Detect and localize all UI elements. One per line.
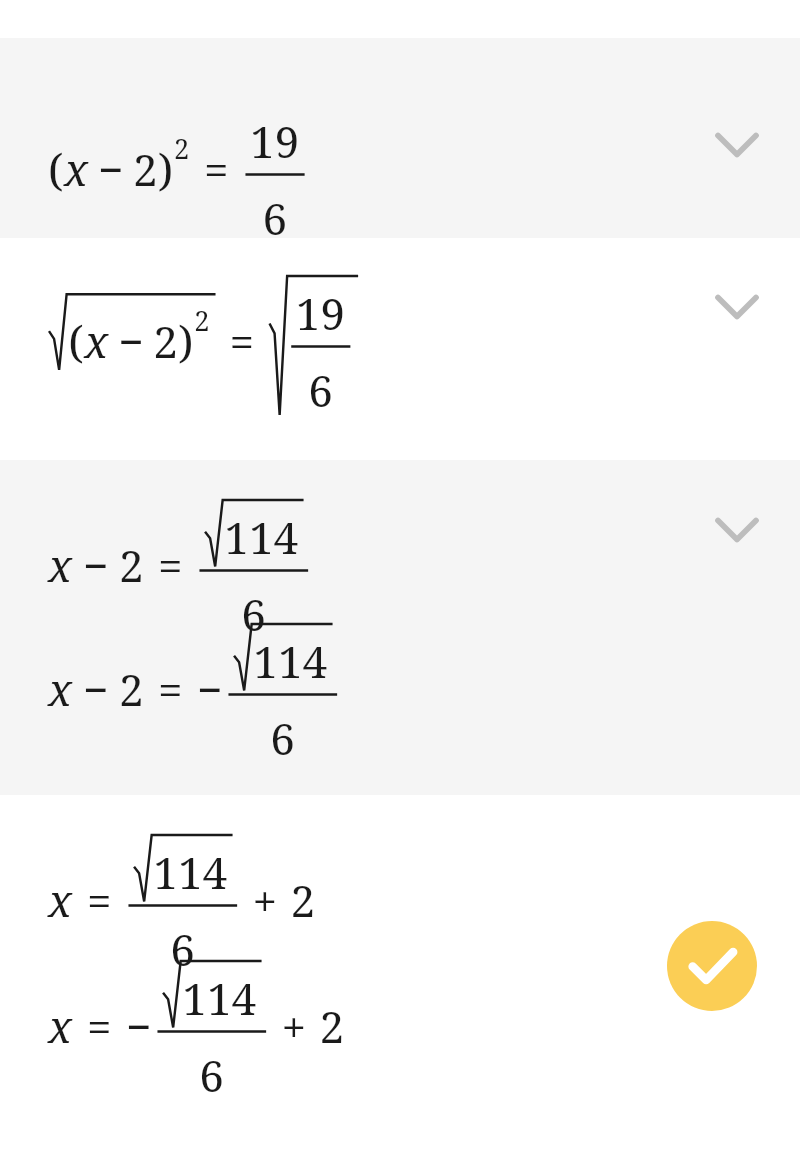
button[interactable] (0, 38, 800, 238)
button[interactable]: Done (667, 921, 757, 1011)
button[interactable] (0, 248, 800, 458)
button[interactable] (0, 795, 800, 1176)
button[interactable] (0, 460, 800, 795)
